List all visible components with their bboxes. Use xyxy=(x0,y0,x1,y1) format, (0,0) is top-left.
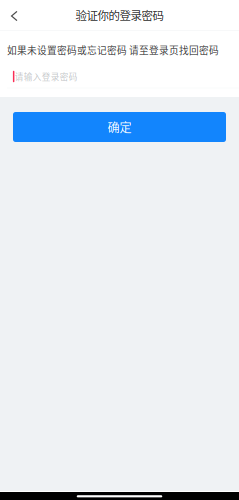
staticText: 验证你的登录密码 xyxy=(75,7,163,23)
button[interactable]: 确定 xyxy=(13,112,226,142)
button[interactable]: Back xyxy=(0,0,27,30)
staticText: 确定 xyxy=(107,118,131,136)
staticText: 如果未设置密码或忘记密码 请至登录页找回密码 xyxy=(7,43,219,57)
staticText: 请输入登录密码 xyxy=(15,70,78,83)
